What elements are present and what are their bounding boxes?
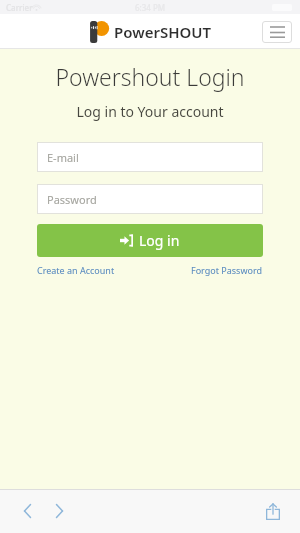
staticText: Forgot Password: [191, 264, 263, 276]
button[interactable]: Back: [12, 496, 42, 526]
staticText: Carrier: [6, 2, 33, 13]
button[interactable]: E-mail: [37, 142, 263, 172]
staticText: Powershout Login: [0, 61, 300, 92]
staticText: Log in: [139, 231, 180, 250]
button[interactable]: Password: [37, 184, 263, 214]
staticText: 6:34 PM: [135, 2, 166, 13]
staticText: E-mail: [47, 150, 79, 165]
button[interactable]: Forward: [44, 496, 74, 526]
button[interactable]: Menu: [262, 21, 292, 43]
staticText: Password: [47, 192, 97, 207]
button[interactable]: Log in: [37, 224, 263, 257]
staticText: Log in to Your account: [0, 102, 300, 121]
button[interactable]: Share: [258, 496, 288, 526]
staticText: Create an Account: [37, 264, 115, 276]
button[interactable]: Create an Account: [37, 264, 115, 276]
staticText: PowerSHOUT: [114, 22, 212, 42]
button[interactable]: Forgot Password: [191, 264, 263, 276]
